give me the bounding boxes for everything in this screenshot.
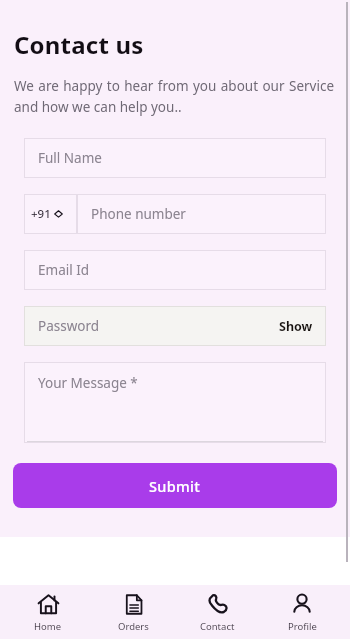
button[interactable]: Orders (96, 585, 170, 639)
staticText: Orders (118, 620, 149, 633)
button[interactable]: Email Id (24, 250, 326, 290)
staticText: Contact us (14, 28, 144, 61)
staticText: Email Id (38, 261, 90, 279)
button[interactable]: Password (24, 306, 326, 346)
button[interactable]: Profile (265, 585, 339, 639)
button[interactable]: +91 (24, 194, 77, 234)
button[interactable]: Show (279, 318, 313, 335)
button[interactable]: Your Message * (24, 362, 326, 443)
staticText: We are happy to hear from you about our … (14, 77, 334, 116)
button[interactable]: Full Name (24, 138, 326, 178)
staticText: Phone number (91, 205, 186, 223)
button[interactable]: Submit (13, 463, 337, 508)
staticText: +91 (31, 206, 51, 222)
button[interactable]: Phone number (77, 194, 326, 234)
staticText: Your Message * (38, 374, 138, 392)
staticText: Contact (200, 620, 235, 633)
staticText: Submit (149, 476, 201, 496)
staticText: Password (38, 317, 279, 335)
staticText: Profile (288, 620, 317, 633)
button[interactable]: Home (11, 585, 85, 639)
button[interactable]: Contact (180, 585, 254, 639)
staticText: Full Name (38, 149, 102, 167)
staticText: Home (34, 620, 62, 633)
